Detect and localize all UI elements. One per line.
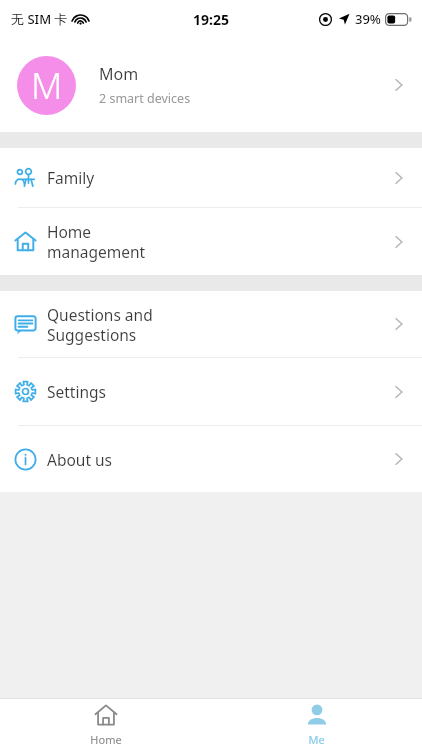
button[interactable]: Settings — [0, 358, 422, 425]
button[interactable]: Family — [0, 148, 422, 207]
button[interactable]: M — [0, 38, 422, 132]
staticText: 39% — [355, 10, 381, 28]
staticText: Family — [47, 167, 390, 188]
staticText: Settings — [47, 381, 390, 402]
staticText: 2 smart devices — [99, 90, 191, 107]
staticText: Mom — [99, 63, 139, 85]
button[interactable]: About us — [0, 426, 422, 492]
button[interactable]: Home management — [0, 208, 422, 275]
staticText: About us — [47, 449, 390, 470]
staticText: Home — [90, 732, 122, 747]
button[interactable]: Me — [211, 699, 422, 750]
staticText: Home management — [47, 221, 390, 262]
button[interactable]: Home — [0, 699, 211, 750]
staticText: Questions and Suggestions — [47, 304, 390, 345]
staticText: 无 SIM 卡 — [11, 10, 68, 28]
button[interactable]: Questions and Suggestions — [0, 291, 422, 357]
staticText: M — [31, 61, 63, 110]
staticText: Me — [308, 732, 325, 747]
staticText: 19:25 — [193, 10, 229, 29]
